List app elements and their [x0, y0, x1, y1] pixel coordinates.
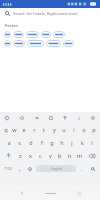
staticText: b — [58, 152, 62, 159]
button[interactable]: p — [89, 123, 99, 136]
button[interactable]: g — [47, 136, 57, 149]
staticText: s — [18, 139, 21, 146]
staticText: ?123 — [4, 166, 13, 171]
staticText: a — [7, 139, 11, 146]
button[interactable] — [63, 40, 74, 47]
button[interactable]: Symbols — [1, 162, 15, 175]
button[interactable]: w — [10, 123, 19, 136]
staticText: t — [43, 126, 45, 133]
staticText: r — [33, 126, 36, 133]
button[interactable]: r — [29, 123, 39, 136]
button[interactable]: y — [49, 123, 59, 136]
button[interactable]: a — [3, 136, 14, 149]
button[interactable] — [13, 40, 25, 47]
button[interactable]: z — [15, 149, 25, 162]
staticText: j — [71, 139, 73, 146]
staticText: Search for hotels, flights and more — [13, 11, 78, 16]
button[interactable] — [53, 31, 65, 38]
button[interactable]: GIF — [19, 115, 25, 121]
staticText: k — [81, 139, 84, 146]
button[interactable]: j — [67, 136, 77, 149]
staticText: c — [39, 152, 42, 159]
staticText: q — [4, 126, 8, 133]
button[interactable]: Emoji — [25, 162, 35, 175]
staticText: , — [19, 165, 21, 172]
button[interactable]: v — [45, 149, 55, 162]
button[interactable]: Search — [0, 8, 100, 19]
button[interactable]: Space — [36, 165, 76, 172]
staticText: m — [77, 152, 83, 159]
staticText: g — [50, 139, 54, 146]
staticText: x — [29, 152, 32, 159]
staticText: h — [60, 139, 64, 146]
button[interactable]: i — [69, 123, 79, 136]
button[interactable]: o — [79, 123, 89, 136]
button[interactable] — [41, 31, 51, 38]
button[interactable]: l — [87, 136, 97, 149]
button[interactable]: q — [1, 123, 10, 136]
staticText: y — [53, 126, 56, 133]
button[interactable] — [27, 40, 44, 47]
button[interactable]: t — [39, 123, 49, 136]
button[interactable]: Google — [4, 115, 10, 121]
button[interactable]: . — [77, 162, 87, 175]
button[interactable]: Theme — [62, 115, 68, 121]
button[interactable]: Recent apps — [75, 189, 83, 197]
staticText: i — [73, 126, 75, 133]
staticText: e — [22, 126, 26, 133]
button[interactable]: Home — [43, 189, 57, 197]
button[interactable]: , — [15, 162, 25, 175]
other: Search — [4, 10, 11, 17]
button[interactable]: e — [19, 123, 29, 136]
staticText: English — [51, 167, 62, 171]
staticText: w — [12, 126, 17, 133]
button[interactable] — [46, 40, 61, 47]
button[interactable]: h — [57, 136, 67, 149]
button[interactable]: Clipboard — [48, 115, 54, 121]
button[interactable]: Shift — [1, 149, 15, 162]
button[interactable] — [4, 40, 11, 47]
staticText: Recent — [5, 23, 19, 28]
staticText: u — [62, 126, 66, 133]
button[interactable]: d — [25, 136, 36, 149]
button[interactable]: b — [55, 149, 65, 162]
button[interactable]: Backspace — [85, 149, 99, 162]
button[interactable]: k — [77, 136, 87, 149]
button[interactable]: Settings — [90, 115, 96, 121]
button[interactable]: Sticker — [34, 115, 40, 121]
staticText: p — [92, 126, 96, 133]
staticText: . — [81, 165, 83, 172]
button[interactable] — [13, 31, 24, 38]
button[interactable]: Search — [87, 162, 99, 175]
staticText: f — [41, 139, 43, 146]
button[interactable]: m — [75, 149, 85, 162]
button[interactable]: s — [14, 136, 25, 149]
button[interactable] — [4, 31, 11, 38]
button[interactable]: c — [35, 149, 45, 162]
button[interactable]: More — [76, 115, 82, 121]
button[interactable]: x — [25, 149, 35, 162]
staticText: o — [82, 126, 86, 133]
staticText: n — [68, 152, 72, 159]
staticText: z — [19, 152, 22, 159]
staticText: l — [91, 139, 93, 146]
button[interactable]: n — [65, 149, 75, 162]
button[interactable]: u — [59, 123, 69, 136]
button[interactable]: f — [36, 136, 47, 149]
staticText: d — [29, 139, 33, 146]
staticText: v — [49, 152, 52, 159]
button[interactable] — [26, 31, 39, 38]
button[interactable]: Back — [18, 189, 26, 197]
